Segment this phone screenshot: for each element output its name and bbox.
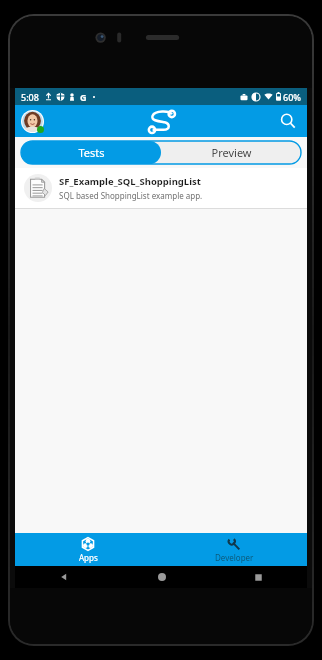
staticText: SQL based ShoppingList example app. [59, 190, 203, 201]
button[interactable]: Tests [21, 141, 161, 164]
staticText: 5:08 [21, 91, 39, 103]
staticText: Tests [78, 145, 105, 160]
staticText: Preview [211, 145, 252, 160]
staticText: 60% [283, 91, 301, 103]
button[interactable]: Search [275, 108, 301, 134]
button[interactable]: Developer [161, 533, 307, 566]
button[interactable]: Apps [15, 533, 161, 566]
staticText: Developer [215, 552, 254, 563]
staticText: G [80, 91, 87, 103]
button[interactable]: Back [15, 566, 113, 588]
button[interactable]: Preview [161, 141, 301, 164]
staticText: Apps [79, 552, 98, 563]
button[interactable]: Profile [20, 109, 44, 133]
button[interactable]: SF_Example_SQL_ShoppingList [15, 168, 307, 208]
staticText: SF_Example_SQL_ShoppingList [59, 175, 201, 188]
button[interactable]: Home [113, 566, 210, 588]
button[interactable]: Recent apps [210, 566, 307, 588]
